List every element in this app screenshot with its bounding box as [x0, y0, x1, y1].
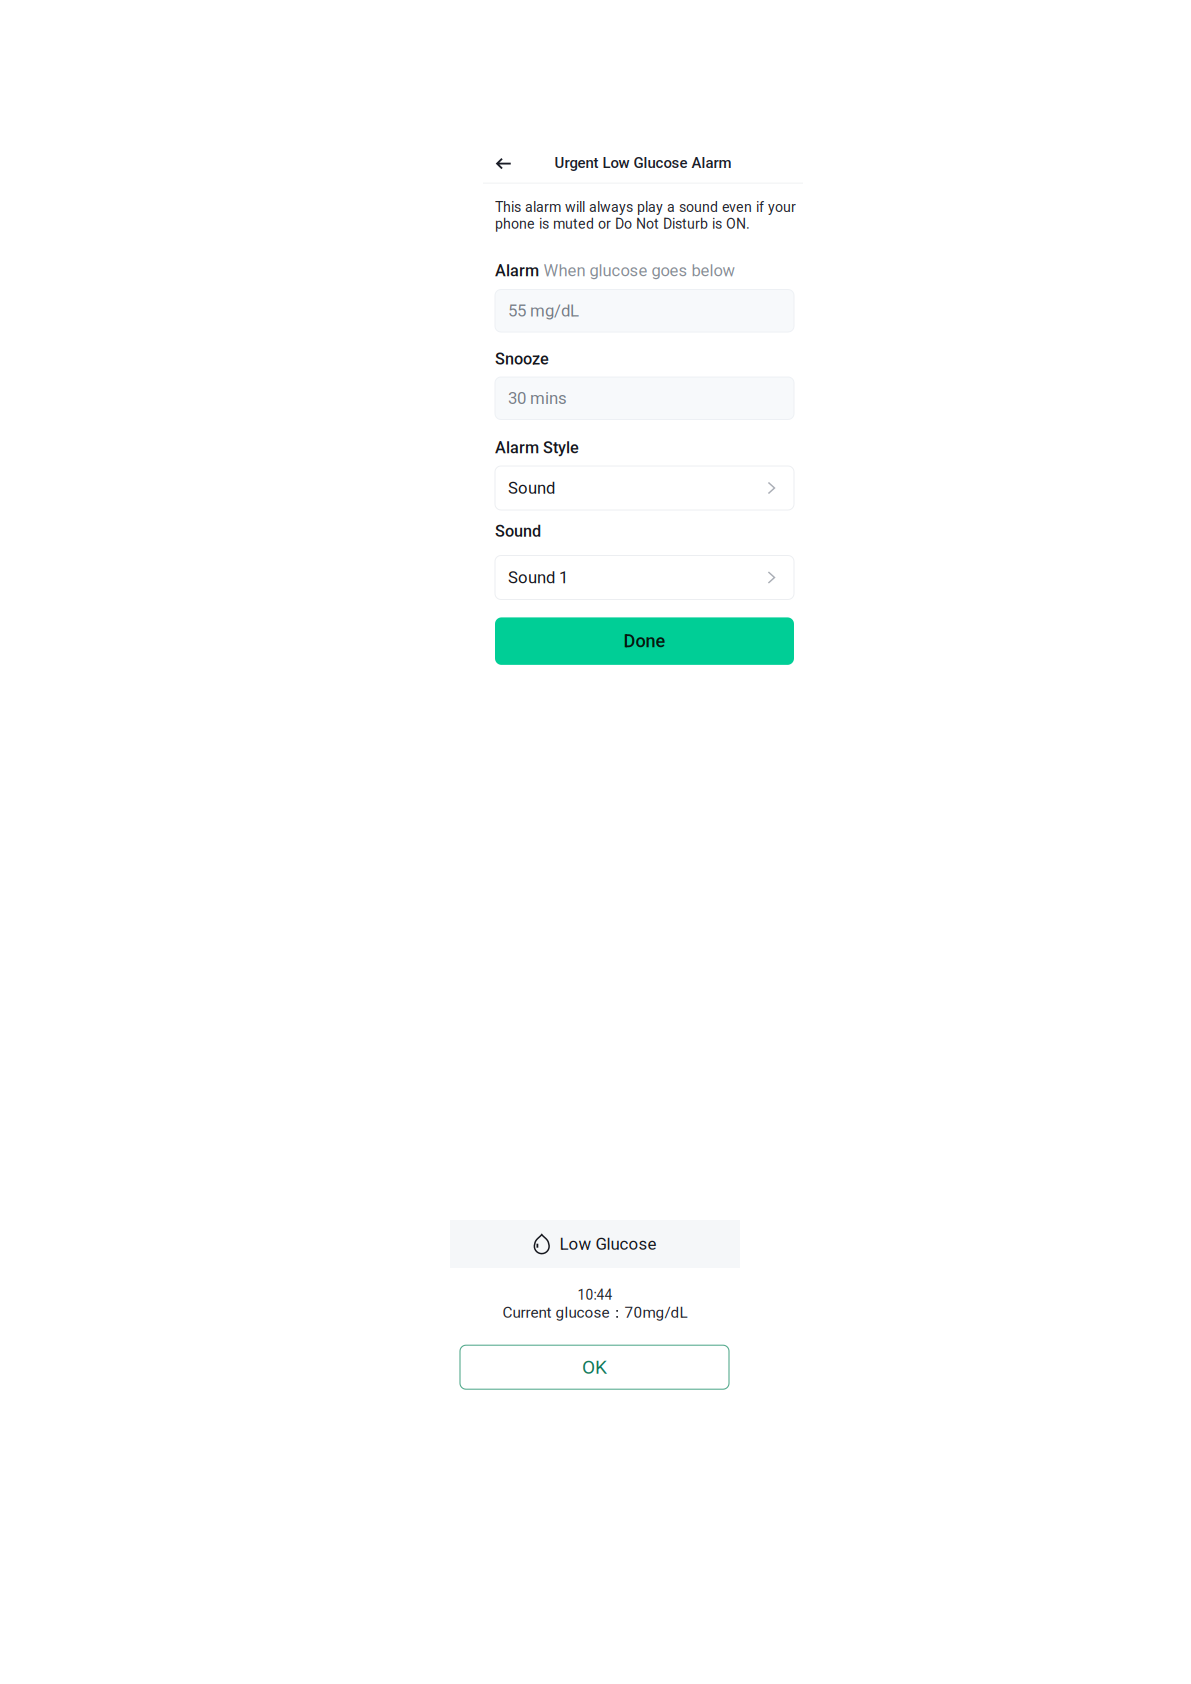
button[interactable]: Back [489, 144, 519, 184]
staticText: 30 mins [508, 388, 567, 408]
staticText: Sound 1 [508, 568, 568, 587]
staticText: Done [623, 630, 665, 652]
button[interactable]: OK [460, 1345, 729, 1389]
button[interactable]: 55 mg/dL [495, 289, 794, 332]
button[interactable]: Sound [495, 466, 794, 510]
staticText: 10:44 [577, 1287, 612, 1303]
staticText: Sound [495, 522, 541, 541]
staticText: 55 mg/dL [508, 301, 579, 321]
staticText: This alarm will always play a sound even… [495, 199, 796, 215]
staticText: phone is muted or Do Not Disturb is ON. [495, 216, 750, 232]
staticText: Snooze [495, 349, 549, 369]
staticText: When glucose goes below [543, 261, 734, 280]
staticText: Low Glucose [559, 1234, 656, 1254]
staticText: Sound [508, 478, 555, 498]
button[interactable]: Done [495, 617, 794, 665]
staticText: Urgent Low Glucose Alarm [554, 154, 731, 172]
button[interactable]: 30 mins [495, 377, 794, 419]
button[interactable]: Sound 1 [495, 555, 794, 599]
staticText: Alarm Style [495, 438, 579, 457]
staticText: OK [582, 1356, 607, 1378]
staticText: Current glucose：70mg/dL [502, 1303, 687, 1322]
staticText: Alarm [495, 261, 539, 280]
